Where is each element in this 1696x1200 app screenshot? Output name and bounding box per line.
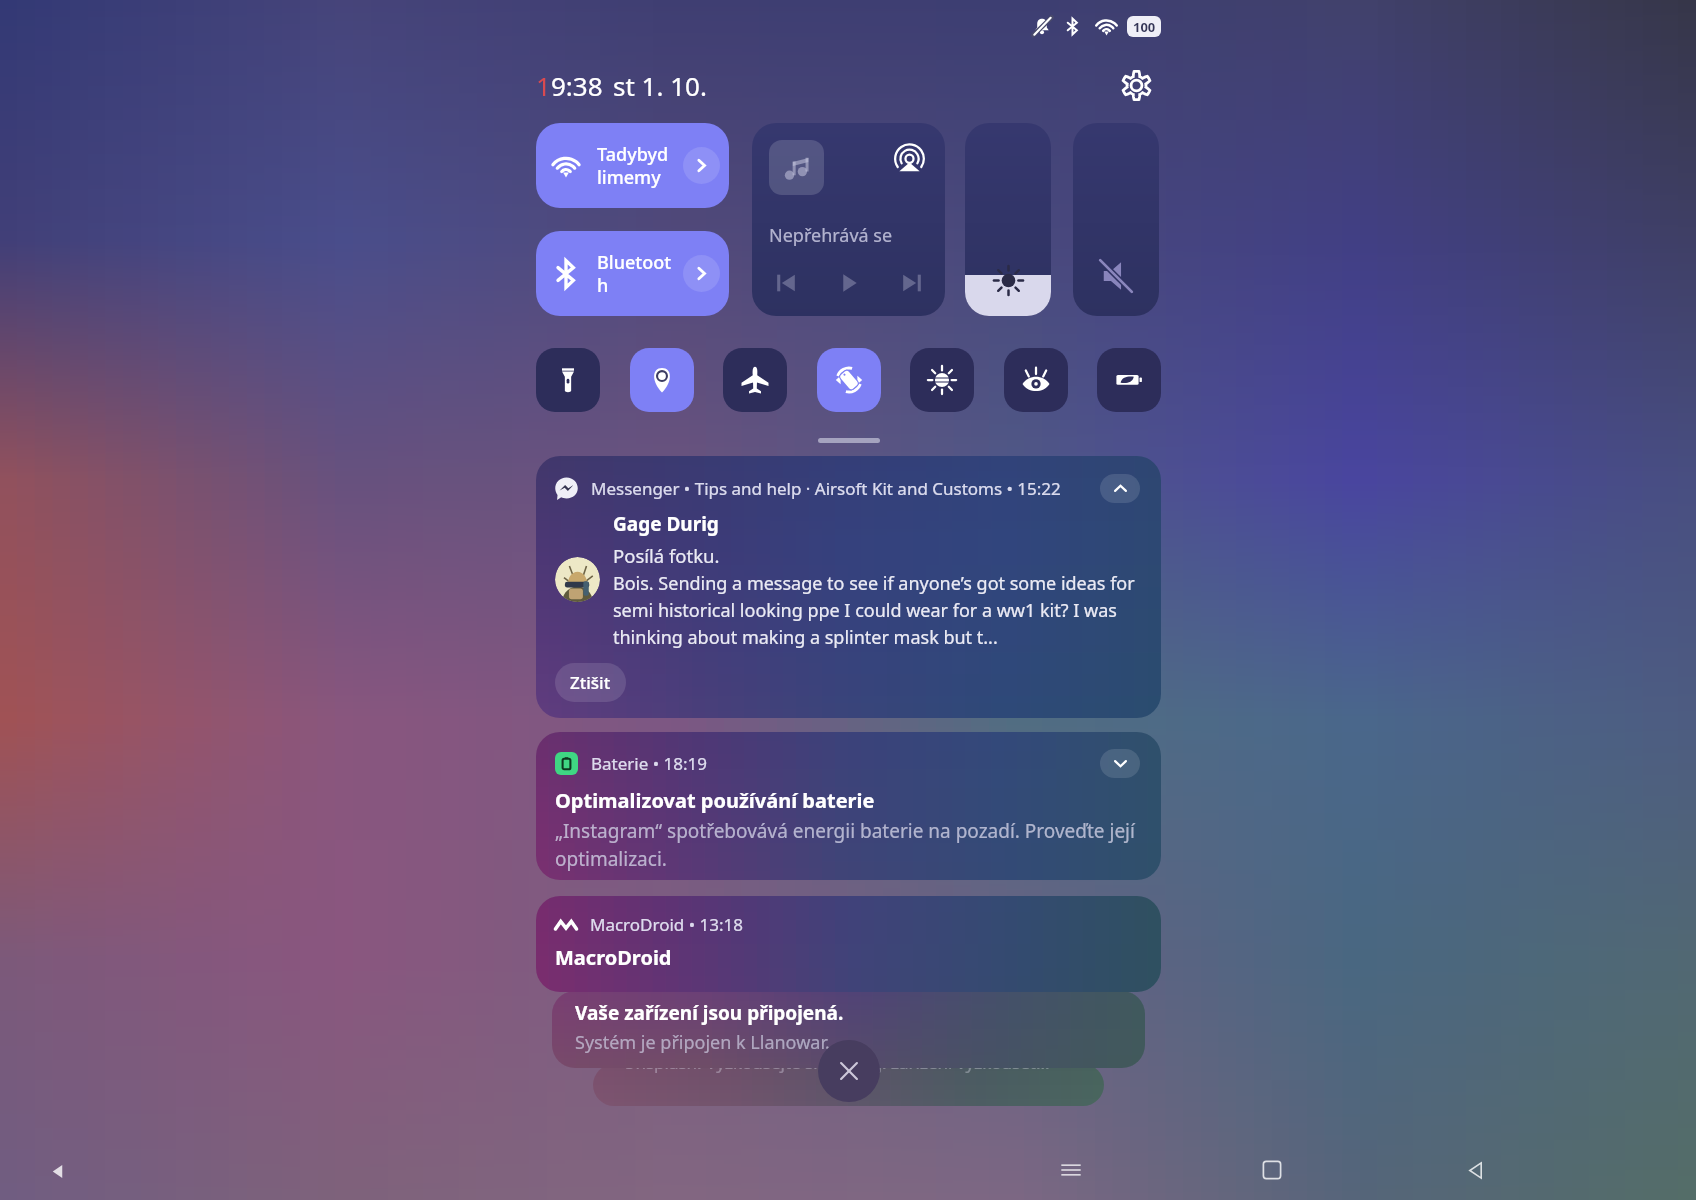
button[interactable]: Recents [1043,1142,1099,1198]
button[interactable]: Location [630,348,694,412]
staticText: Bois. Sending a message to see if anyone… [613,571,1140,649]
button[interactable]: Settings [1111,60,1161,110]
staticText: st 1. 10. [613,68,707,103]
staticText: Gage Durig [613,511,719,537]
staticText: Bluetoot h [597,250,683,297]
staticText: 100 [1133,18,1156,36]
button[interactable]: Brightness [965,123,1051,316]
staticText: Nepřehrává se [769,223,893,248]
staticText: Vaše zařízení jsou připojená. [575,1000,844,1026]
button[interactable]: Home [1244,1142,1300,1198]
button[interactable]: Baterie • 18:19 [536,732,1161,880]
staticText: Optimalizovat používání baterie [555,787,875,814]
button[interactable]: Battery saver [1097,348,1161,412]
staticText: Unsplash: Vyzkoušejte sklenici aj. zaříz… [623,1064,1050,1074]
button[interactable]: Play [832,266,866,300]
button[interactable]: Cast [889,140,929,180]
button[interactable]: Back [29,1143,85,1199]
staticText: 1 [536,68,551,103]
button[interactable]: Back [1447,1142,1503,1198]
button[interactable]: Flashlight [536,348,600,412]
button[interactable]: Auto rotate [817,348,881,412]
staticText: „Instagram“ spotřebovává energii baterie… [555,818,1140,872]
button[interactable]: Next [895,266,929,300]
staticText: MacroDroid • 13:18 [590,913,743,936]
button[interactable]: Previous [769,266,803,300]
button[interactable]: Cast [752,123,945,316]
button[interactable]: Bluetoot h [536,231,729,316]
staticText: Tadybyd limemy [597,142,683,189]
staticText: Messenger • Tips and help · Airsoft Kit … [591,477,1061,500]
button[interactable]: Messenger • Tips and help · Airsoft Kit … [536,456,1161,718]
button[interactable]: Expand [1100,749,1140,778]
button[interactable]: Eye comfort [1004,348,1068,412]
button[interactable]: MacroDroid • 13:18 [536,896,1161,992]
button[interactable]: Ztišit [555,663,626,702]
staticText: Systém je připojen k Llanowar. [575,1030,830,1055]
button[interactable]: Collapse [1100,474,1140,503]
staticText: 9:38 [551,68,603,103]
button[interactable]: Mute [1073,123,1159,316]
button[interactable]: Airplane mode [723,348,787,412]
staticText: Posílá fotku. [613,543,720,568]
staticText: Baterie • 18:19 [591,752,707,775]
button[interactable]: Auto brightness [910,348,974,412]
staticText: MacroDroid [555,944,672,971]
button[interactable]: Clear all notifications [818,1040,880,1102]
button[interactable]: Tadybyd limemy [536,123,729,208]
staticText: Ztišit [570,671,611,694]
